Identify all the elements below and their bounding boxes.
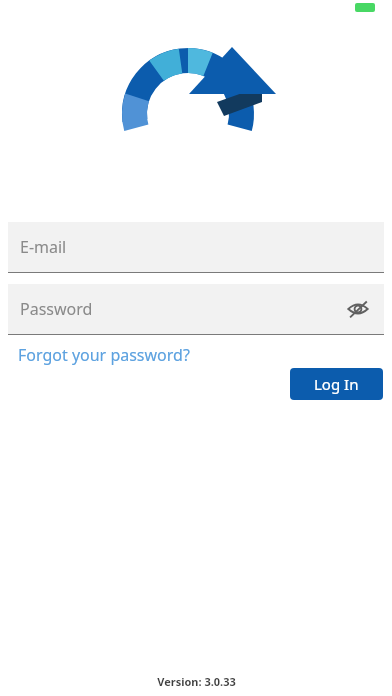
staticText: Version: 3.0.33 xyxy=(157,674,236,689)
button[interactable]: Show password xyxy=(338,289,378,329)
staticText: Forgot your password? xyxy=(18,344,190,366)
button[interactable]: Log In xyxy=(290,368,383,400)
button[interactable]: Password xyxy=(8,284,384,335)
button[interactable]: Forgot your password? xyxy=(10,341,198,369)
staticText: Password xyxy=(20,298,93,320)
staticText: E-mail xyxy=(20,236,67,258)
staticText: Log In xyxy=(314,374,359,394)
button[interactable]: E-mail xyxy=(8,222,384,273)
